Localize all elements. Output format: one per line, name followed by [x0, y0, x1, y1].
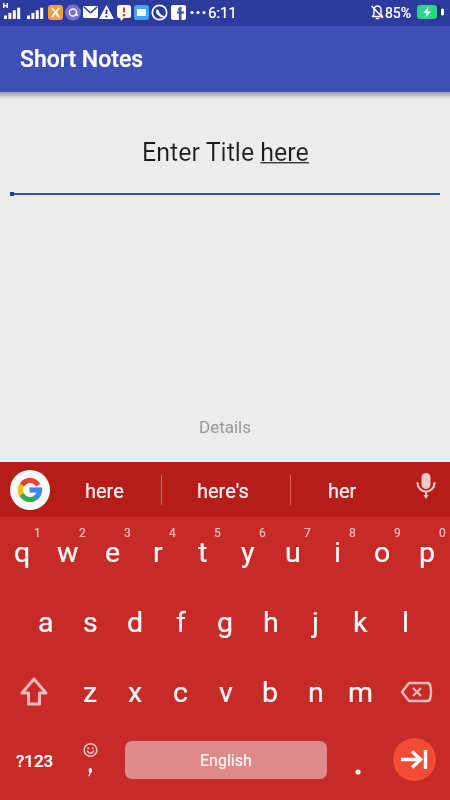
staticText: t — [198, 536, 208, 569]
button[interactable]: x — [113, 657, 158, 727]
staticText: o — [374, 536, 391, 569]
button[interactable]: here's — [168, 463, 278, 518]
staticText: 6 — [259, 526, 266, 540]
button[interactable] — [383, 657, 450, 727]
staticText: ?123 — [16, 751, 54, 771]
staticText: 85% — [385, 5, 411, 21]
staticText: c — [173, 676, 188, 709]
button[interactable]: r — [135, 517, 180, 587]
staticText: q — [14, 536, 31, 569]
button[interactable]: d — [113, 587, 158, 657]
button[interactable]: j — [293, 587, 338, 657]
staticText: s — [83, 606, 98, 639]
button[interactable] — [68, 724, 113, 800]
staticText: here — [85, 479, 124, 502]
staticText: r — [153, 536, 163, 569]
button[interactable]: i — [315, 517, 360, 587]
staticText: 1 — [34, 526, 41, 540]
staticText: f — [176, 606, 186, 639]
staticText: 8 — [349, 526, 356, 540]
button[interactable]: w — [45, 517, 90, 587]
button[interactable]: y — [225, 517, 270, 587]
staticText: w — [57, 536, 79, 569]
button[interactable]: a — [23, 587, 68, 657]
staticText: e — [105, 536, 121, 569]
staticText: 6:11 — [208, 4, 237, 22]
staticText: j — [312, 606, 319, 639]
staticText: x — [128, 676, 143, 709]
button[interactable]: ?123 — [1, 724, 69, 797]
button[interactable] — [404, 464, 448, 514]
button[interactable]: v — [203, 657, 248, 727]
staticText: Details — [199, 417, 252, 437]
button[interactable]: e — [90, 517, 135, 587]
staticText: d — [127, 606, 144, 639]
staticText: English — [200, 751, 252, 770]
staticText: b — [262, 676, 279, 709]
staticText: Enter Title here — [142, 138, 309, 167]
staticText: i — [334, 536, 341, 569]
button[interactable]: s — [68, 587, 113, 657]
button[interactable]: m — [338, 657, 383, 727]
staticText: p — [419, 536, 436, 569]
staticText: u — [285, 536, 301, 569]
button[interactable] — [0, 657, 67, 727]
button[interactable]: English — [125, 741, 327, 779]
staticText: 2 — [79, 526, 86, 540]
button[interactable]: p — [405, 517, 450, 587]
button[interactable]: q — [0, 517, 45, 587]
button[interactable]: o — [360, 517, 405, 587]
staticText: y — [241, 536, 255, 569]
staticText: 4 — [169, 526, 176, 540]
button[interactable]: b — [248, 657, 293, 727]
staticText: 0 — [439, 526, 446, 540]
staticText: 7 — [304, 526, 311, 540]
staticText: 3 — [124, 526, 131, 540]
button[interactable]: h — [248, 587, 293, 657]
staticText: h — [263, 606, 279, 639]
staticText: l — [402, 606, 409, 639]
button[interactable] — [393, 738, 436, 781]
staticText: v — [219, 676, 233, 709]
staticText: g — [217, 606, 234, 639]
staticText: here's — [197, 479, 249, 502]
button[interactable]: z — [68, 657, 113, 727]
button[interactable]: t — [180, 517, 225, 587]
staticText: a — [38, 606, 54, 639]
button[interactable]: k — [338, 587, 383, 657]
staticText: Short Notes — [20, 46, 144, 73]
staticText: k — [353, 606, 368, 639]
button[interactable]: g — [203, 587, 248, 657]
staticText: her — [328, 479, 357, 502]
button[interactable]: here — [49, 463, 159, 518]
button[interactable]: Enter Title here — [0, 122, 450, 182]
staticText: m — [348, 676, 373, 709]
button[interactable]: f — [158, 587, 203, 657]
button[interactable]: n — [293, 657, 338, 727]
button[interactable] — [333, 724, 379, 800]
button[interactable]: Details — [125, 397, 325, 457]
button[interactable]: her — [287, 463, 397, 518]
button[interactable]: u — [270, 517, 315, 587]
button[interactable] — [10, 470, 50, 510]
button[interactable]: c — [158, 657, 203, 727]
button[interactable]: l — [383, 587, 428, 657]
staticText: 9 — [394, 526, 401, 540]
staticText: n — [308, 676, 324, 709]
staticText: z — [83, 676, 98, 709]
staticText: 5 — [214, 526, 221, 540]
